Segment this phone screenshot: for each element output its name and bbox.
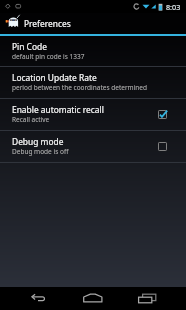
button[interactable]: Enable automatic recall xyxy=(0,99,186,130)
staticText: 8:03 xyxy=(166,2,181,12)
button[interactable]: Recent apps xyxy=(130,287,166,310)
button[interactable]: Debug mode xyxy=(0,131,186,162)
button[interactable]: Back xyxy=(21,287,57,310)
staticText: Pin Code xyxy=(12,41,47,52)
button[interactable]: Home xyxy=(75,287,111,310)
button[interactable]: Pin Code xyxy=(0,36,186,66)
staticText: period between the coordinates determine… xyxy=(12,83,148,92)
staticText: Debug mode is off xyxy=(12,147,69,156)
button[interactable]: Location Update Rate xyxy=(0,67,186,98)
staticText: Location Update Rate xyxy=(12,72,97,83)
staticText: Recall active xyxy=(12,115,50,124)
staticText: Enable automatic recall xyxy=(12,104,104,115)
staticText: Debug mode xyxy=(12,136,64,147)
staticText: default pin code is 1337 xyxy=(12,52,85,61)
staticText: Preferences xyxy=(24,18,71,29)
